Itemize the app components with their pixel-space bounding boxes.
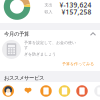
staticText: ¥157,258 bbox=[61, 8, 91, 16]
staticText: 予算を作ってみる bbox=[62, 61, 94, 66]
staticText: 支出 bbox=[44, 2, 52, 7]
button[interactable]: Service bbox=[2, 85, 14, 97]
button[interactable]: Service bbox=[76, 85, 88, 97]
staticText: ぎを防ぎましょう bbox=[24, 52, 56, 57]
staticText: ¥-139,624 bbox=[59, 1, 91, 9]
staticText: おススメサービス bbox=[4, 75, 44, 81]
staticText: 予算を設定して、お金の使いす bbox=[24, 40, 76, 50]
button[interactable]: Service bbox=[22, 85, 34, 97]
button[interactable]: 予算を作ってみる bbox=[60, 59, 96, 68]
button[interactable]: 今月の予算 bbox=[0, 29, 100, 39]
button[interactable]: Service bbox=[40, 85, 52, 97]
staticText: 収入 bbox=[44, 9, 52, 14]
button[interactable]: Service bbox=[94, 85, 100, 97]
staticText: 今月の予算 bbox=[4, 31, 29, 37]
button[interactable]: Service bbox=[59, 85, 70, 97]
